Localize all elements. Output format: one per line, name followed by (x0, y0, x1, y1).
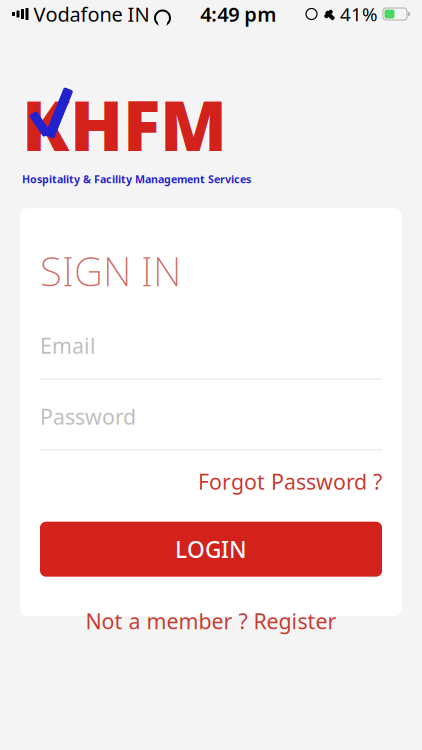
staticText: 41% (340, 2, 378, 26)
button[interactable]: Not a member ? Register (85, 601, 336, 641)
staticText: 4:49 pm (200, 1, 276, 27)
staticText: Not a member ? Register (85, 607, 336, 635)
staticText: LOGIN (175, 534, 247, 564)
staticText: Password (40, 402, 136, 431)
staticText: Email (40, 331, 96, 360)
staticText: Forgot Password ? (198, 467, 382, 496)
staticText: Vodafone IN (33, 1, 149, 27)
button[interactable]: Forgot Password ? (198, 463, 382, 500)
staticText: Hospitality & Facility Management Servic… (22, 172, 251, 186)
button[interactable]: LOGIN (40, 522, 382, 577)
staticText: KHFM (22, 78, 227, 170)
staticText: SIGN IN (40, 244, 181, 297)
